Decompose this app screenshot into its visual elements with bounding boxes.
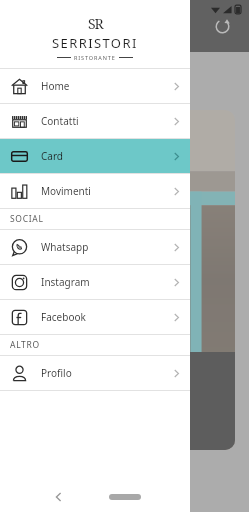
button[interactable]: Contatti (0, 104, 190, 138)
button[interactable]: Card (0, 139, 190, 173)
staticText: Whatsapp (41, 240, 89, 254)
button[interactable]: Facebook (0, 300, 190, 334)
button[interactable]: Movimenti (0, 174, 190, 208)
button[interactable]: Home (109, 494, 141, 500)
button[interactable]: Back (50, 488, 68, 506)
button[interactable]: Profilo (0, 356, 190, 390)
staticText: Profilo (41, 366, 72, 380)
staticText: Card (41, 149, 64, 163)
staticText: SOCIAL (10, 213, 44, 225)
staticText: SERRISTORI (52, 34, 138, 52)
staticText: Facebook (41, 310, 86, 324)
staticText: RISTORANTE (74, 54, 116, 61)
staticText: SERRISTORI (22, 238, 176, 272)
button[interactable]: Home (0, 69, 190, 103)
button[interactable]: Whatsapp (0, 230, 190, 264)
button[interactable]: Instagram (0, 265, 190, 299)
staticText: SR (88, 14, 103, 33)
staticText: Contatti (41, 114, 79, 128)
staticText: Instagram (41, 275, 90, 289)
button[interactable]: Refresh (209, 13, 235, 39)
staticText: Movimenti (41, 184, 91, 198)
staticText: Home (41, 79, 70, 93)
staticText: ALTRO (10, 339, 40, 351)
